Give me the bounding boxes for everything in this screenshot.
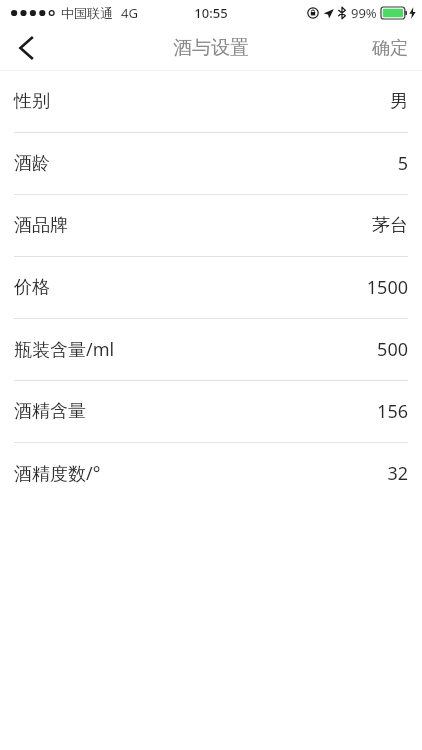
staticText: 99% bbox=[351, 4, 377, 22]
staticText: 32 bbox=[387, 461, 408, 486]
staticText: 酒精含量 bbox=[14, 400, 86, 423]
staticText: 4G bbox=[121, 4, 138, 22]
staticText: 500 bbox=[377, 337, 408, 362]
staticText: 1500 bbox=[366, 275, 408, 300]
staticText: 价格 bbox=[14, 276, 50, 299]
staticText: 确定 bbox=[372, 37, 408, 60]
staticText: 男 bbox=[390, 90, 408, 113]
button[interactable]: 酒龄 bbox=[0, 133, 422, 194]
button[interactable]: 酒品牌 bbox=[0, 195, 422, 256]
staticText: 156 bbox=[377, 399, 408, 424]
button[interactable]: 瓶装含量/ml bbox=[0, 319, 422, 380]
button[interactable]: 确定 bbox=[358, 26, 422, 70]
staticText: 5 bbox=[397, 151, 408, 176]
button[interactable]: 酒精含量 bbox=[0, 381, 422, 442]
button[interactable]: Back bbox=[0, 26, 52, 70]
staticText: 茅台 bbox=[372, 214, 408, 237]
staticText: 中国联通 bbox=[61, 5, 113, 21]
button[interactable]: 性别 bbox=[0, 71, 422, 132]
staticText: 酒龄 bbox=[14, 152, 50, 175]
button[interactable]: 酒精度数/° bbox=[0, 443, 422, 504]
staticText: 酒与设置 bbox=[173, 36, 249, 60]
staticText: 酒精度数/° bbox=[14, 461, 101, 486]
staticText: 性别 bbox=[14, 90, 50, 113]
staticText: 10:55 bbox=[194, 4, 228, 22]
button[interactable]: 价格 bbox=[0, 257, 422, 318]
staticText: 瓶装含量/ml bbox=[14, 337, 115, 362]
staticText: 酒品牌 bbox=[14, 214, 68, 237]
